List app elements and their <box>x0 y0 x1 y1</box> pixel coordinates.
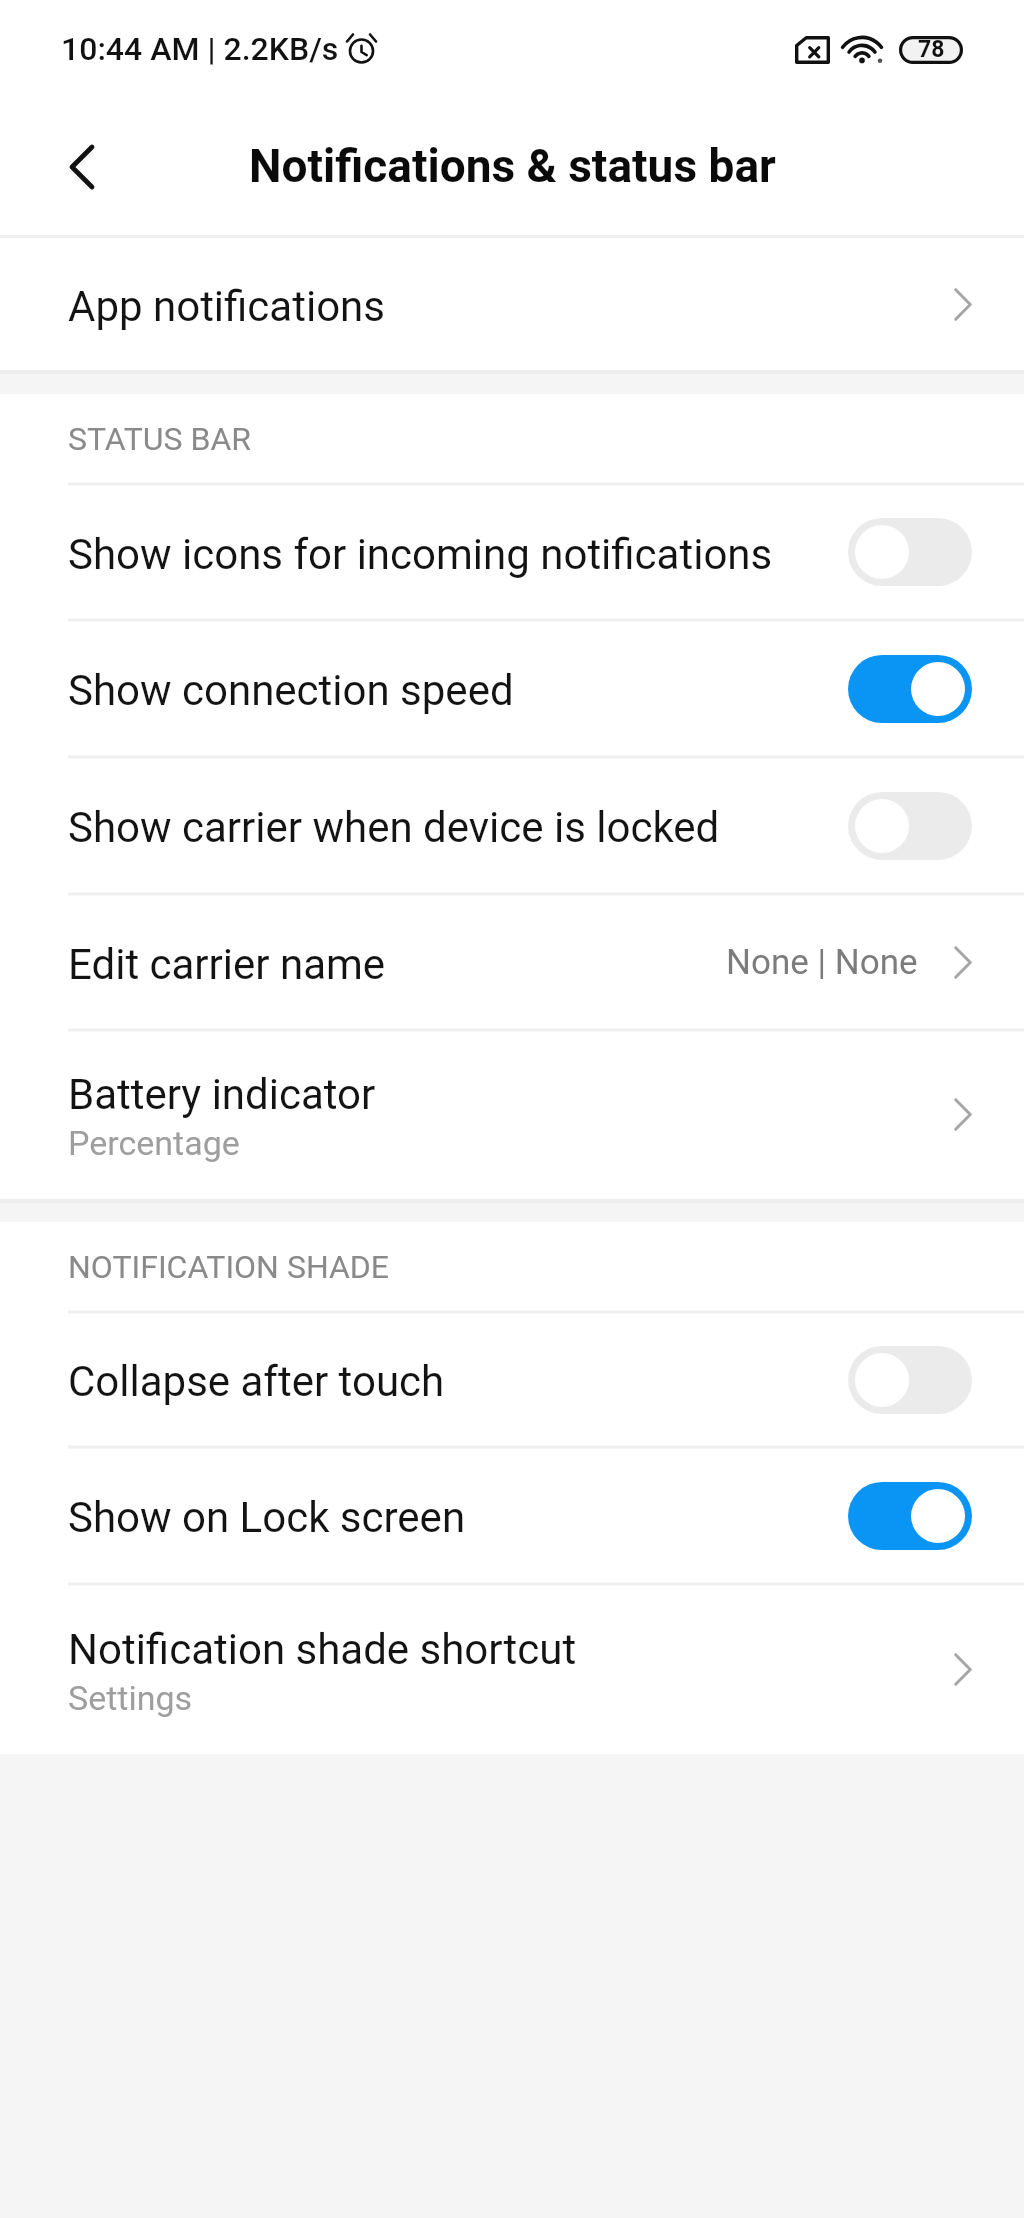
staticText: NOTIFICATION SHADE <box>68 1248 390 1286</box>
button[interactable]: Show icons for incoming notifications, o… <box>848 518 972 586</box>
button[interactable]: Show carrier when device is locked <box>0 757 1024 894</box>
button[interactable]: Collapse after touch, off <box>848 1346 972 1414</box>
button[interactable]: Show on Lock screen <box>0 1447 1024 1584</box>
staticText: Show connection speed <box>68 666 848 715</box>
staticText: STATUS BAR <box>68 420 252 458</box>
staticText: Show on Lock screen <box>68 1493 848 1542</box>
staticText: Percentage <box>68 1123 240 1163</box>
staticText: Notification shade shortcut <box>68 1625 577 1674</box>
button[interactable]: Show icons for incoming notifications <box>0 484 1024 620</box>
button[interactable]: Show on Lock screen, on <box>848 1482 972 1550</box>
button[interactable]: Edit carrier name <box>0 894 1024 1030</box>
button[interactable]: Show connection speed, on <box>848 655 972 723</box>
staticText: App notifications <box>68 282 385 331</box>
staticText: 10:44 AM | 2.2KB/s <box>61 30 339 68</box>
staticText: Settings <box>68 1678 193 1718</box>
button[interactable]: Collapse after touch <box>0 1312 1024 1447</box>
staticText: Notifications & status bar <box>249 139 776 193</box>
staticText: Show icons for incoming notifications <box>68 530 848 579</box>
button[interactable]: Show carrier when device is locked, off <box>848 792 972 860</box>
button[interactable]: Battery indicator <box>0 1030 1024 1199</box>
staticText: Show carrier when device is locked <box>68 803 848 852</box>
button[interactable]: App notifications <box>0 238 1024 370</box>
staticText: Edit carrier name <box>68 940 386 989</box>
button[interactable]: Notification shade shortcut <box>0 1584 1024 1754</box>
button[interactable]: Back <box>0 100 142 235</box>
staticText: Battery indicator <box>68 1070 376 1119</box>
staticText: None | None <box>726 942 918 983</box>
staticText: Collapse after touch <box>68 1357 848 1406</box>
button[interactable]: Show connection speed <box>0 620 1024 757</box>
staticText: 78 <box>918 36 945 63</box>
